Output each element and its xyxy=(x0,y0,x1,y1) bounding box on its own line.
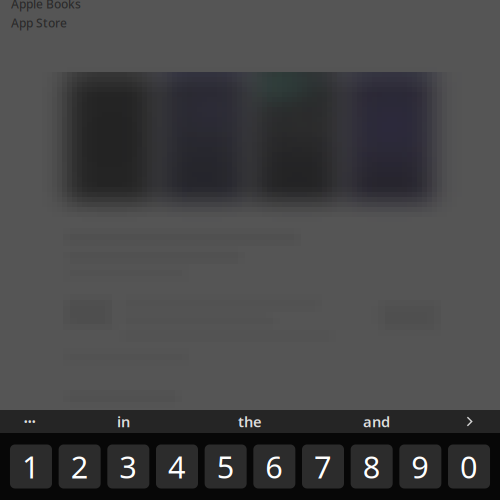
staticText: 9 xyxy=(411,446,429,487)
staticText: 0 xyxy=(460,446,478,487)
staticText: 2 xyxy=(71,446,89,487)
staticText: 5 xyxy=(217,446,235,487)
button[interactable]: 0 xyxy=(448,444,490,488)
button[interactable]: in xyxy=(60,410,187,433)
button[interactable]: 3 xyxy=(107,444,149,488)
button[interactable]: 6 xyxy=(253,444,295,488)
button[interactable]: and xyxy=(313,410,440,433)
staticText: 7 xyxy=(314,446,332,487)
staticText: App Store xyxy=(11,15,67,31)
button[interactable]: the xyxy=(187,410,313,433)
button[interactable]: 2 xyxy=(59,444,101,488)
staticText: 4 xyxy=(168,446,186,487)
staticText: 6 xyxy=(265,446,283,487)
button[interactable]: Show more predictions xyxy=(440,410,500,433)
staticText: 8 xyxy=(363,446,381,487)
staticText: Apple Books xyxy=(11,0,81,12)
staticText: the xyxy=(238,412,262,431)
staticText: and xyxy=(363,412,390,431)
staticText: 3 xyxy=(119,446,137,487)
button[interactable]: 9 xyxy=(399,444,441,488)
button[interactable]: 4 xyxy=(156,444,198,488)
staticText: 1 xyxy=(22,446,40,487)
button[interactable]: 8 xyxy=(351,444,393,488)
button[interactable]: 7 xyxy=(302,444,344,488)
staticText: ••• xyxy=(24,415,36,428)
staticText: in xyxy=(117,412,130,431)
button[interactable]: More options xyxy=(0,410,60,433)
button[interactable]: 5 xyxy=(205,444,247,488)
button[interactable]: 1 xyxy=(10,444,52,488)
